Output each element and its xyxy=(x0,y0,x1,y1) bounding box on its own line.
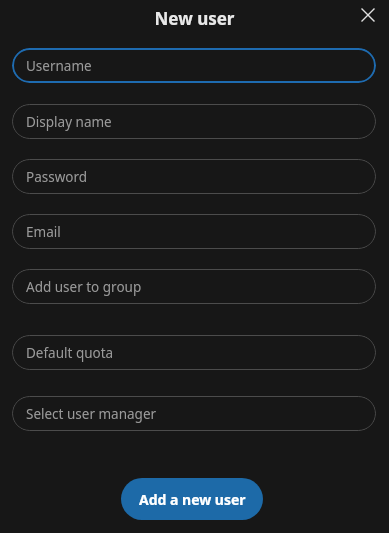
button[interactable]: Add user to group xyxy=(12,269,376,304)
button[interactable]: Display name xyxy=(12,104,376,139)
button[interactable]: Email xyxy=(12,214,376,249)
button[interactable]: Add a new user xyxy=(121,478,263,520)
staticText: Display name xyxy=(26,113,112,131)
button[interactable]: Password xyxy=(12,159,376,194)
staticText: Add a new user xyxy=(139,490,246,509)
staticText: Email xyxy=(26,223,61,241)
button[interactable]: Username xyxy=(12,48,376,83)
staticText: New user xyxy=(0,7,389,30)
button[interactable]: Default quota xyxy=(12,335,376,370)
button[interactable]: Select user manager xyxy=(12,396,376,431)
staticText: Select user manager xyxy=(26,405,157,423)
staticText: Password xyxy=(26,168,88,186)
staticText: Default quota xyxy=(26,344,114,362)
button[interactable]: Close xyxy=(354,1,382,29)
staticText: Add user to group xyxy=(26,278,142,296)
staticText: Username xyxy=(26,57,92,75)
